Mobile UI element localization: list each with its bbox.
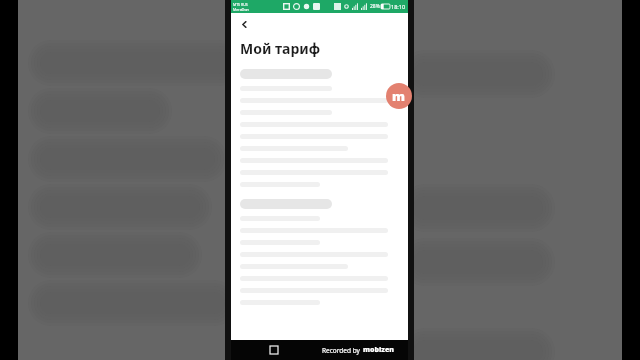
staticText: 18:10	[391, 3, 406, 10]
staticText: Recorded by	[322, 346, 360, 355]
staticText: МегаФон	[233, 7, 249, 12]
staticText: Мой тариф	[240, 39, 321, 58]
staticText: mobizen	[363, 345, 394, 355]
staticText: MTS RUS	[233, 2, 248, 7]
staticText: m	[392, 87, 406, 105]
button[interactable]: Recents	[267, 343, 281, 357]
staticText: 28%	[370, 3, 380, 10]
button[interactable]: Back	[231, 13, 257, 35]
button[interactable]: Mobizen recorder	[386, 83, 412, 109]
